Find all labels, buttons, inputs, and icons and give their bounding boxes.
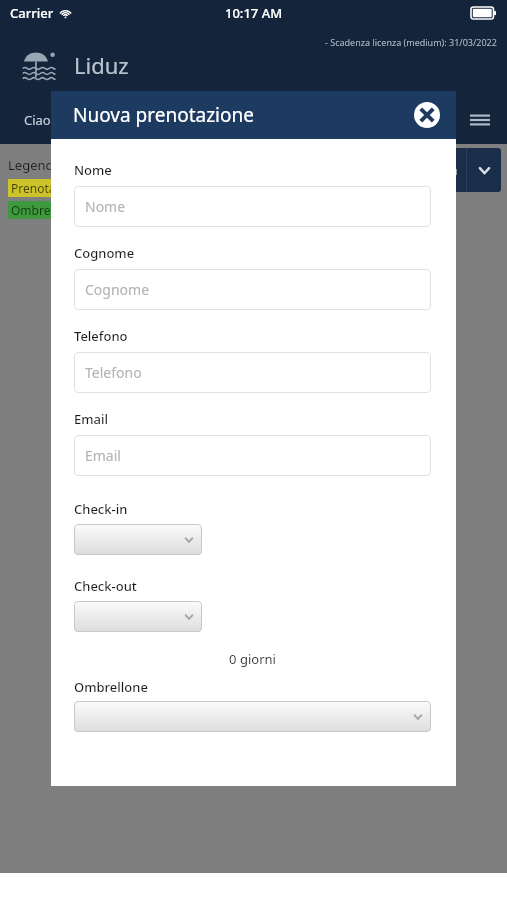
staticText: 10:17 AM — [225, 4, 283, 22]
staticText: Cognome — [74, 244, 135, 262]
staticText: Nuova prenotazione — [73, 102, 254, 128]
button[interactable]: Seleziona — [74, 601, 202, 632]
staticText: Seleziona una spiaggia — [329, 162, 458, 178]
staticText: - Scadenza licenza (medium): 31/03/2022 — [325, 36, 497, 48]
button[interactable]: Nome — [74, 186, 431, 227]
staticText: Liduz — [74, 50, 129, 80]
staticText: Email — [85, 446, 121, 465]
staticText: Legenda — [8, 156, 61, 174]
staticText: Ciao — [24, 111, 51, 129]
staticText: Telefono — [85, 363, 142, 382]
staticText: Ombrellone — [74, 678, 148, 696]
staticText: Check-out — [74, 577, 137, 595]
staticText: Nome — [85, 197, 126, 216]
staticText: Carrier — [10, 4, 54, 22]
staticText: Check-in — [74, 500, 128, 518]
staticText: Prenotato — [11, 180, 68, 196]
button[interactable]: Cognome — [74, 269, 431, 310]
button[interactable]: Chiudi — [412, 100, 442, 130]
staticText: Email — [74, 410, 109, 428]
button[interactable]: Seleziona una spiaggia — [321, 148, 501, 192]
staticText: Nome — [74, 161, 112, 179]
button[interactable]: Menu — [463, 103, 497, 137]
button[interactable]: Telefono — [74, 352, 431, 393]
button[interactable]: Seleziona — [74, 701, 431, 732]
staticText: Telefono — [74, 327, 128, 345]
staticText: 0 giorni — [74, 650, 431, 668]
button[interactable]: Seleziona — [74, 524, 202, 555]
staticText: Cognome — [85, 280, 150, 299]
button[interactable]: Email — [74, 435, 431, 476]
staticText: Ombrellone — [11, 202, 79, 218]
